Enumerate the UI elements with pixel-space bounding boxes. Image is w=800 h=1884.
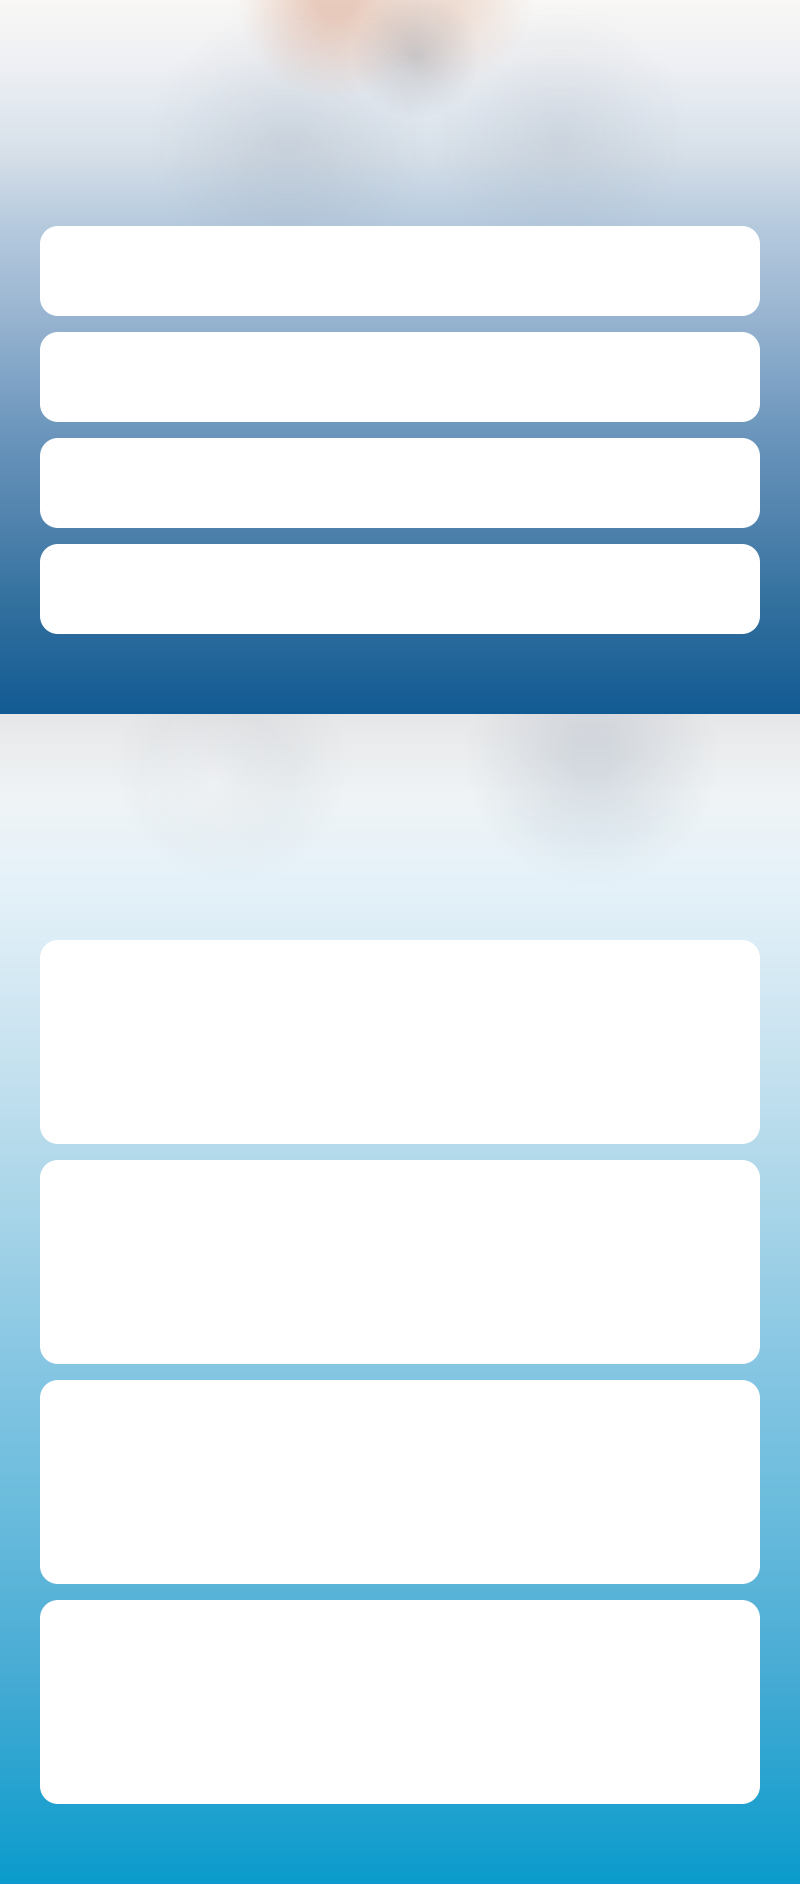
button[interactable]: Checkup bbox=[40, 1600, 760, 1804]
button[interactable]: Contact us bbox=[40, 544, 760, 634]
button[interactable]: Orthodontics bbox=[40, 1160, 760, 1364]
button[interactable]: Reservation bbox=[40, 226, 760, 316]
button[interactable]: Whitening bbox=[40, 1380, 760, 1584]
button[interactable]: Treatment history bbox=[40, 332, 760, 422]
button[interactable]: Clinic information bbox=[40, 438, 760, 528]
